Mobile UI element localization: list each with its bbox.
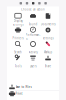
button[interactable]: Share <box>40 54 55 68</box>
staticText: Sound <box>28 22 37 26</box>
staticText: Save to Files <box>16 85 32 89</box>
staticText: Share <box>44 64 51 68</box>
button[interactable]: Layers <box>25 54 40 68</box>
staticText: Performance <box>25 33 40 40</box>
staticText: Tools <box>14 64 21 68</box>
staticText: Search <box>14 50 22 54</box>
button[interactable]: Activity <box>25 40 40 54</box>
button[interactable]: Search <box>10 40 25 54</box>
staticText: Settings <box>12 23 23 26</box>
button[interactable]: Save to Files <box>7 84 59 90</box>
staticText: Settings <box>42 36 53 40</box>
staticText: Markup <box>43 50 52 54</box>
staticText: Printers <box>12 36 23 40</box>
button[interactable]: Documents <box>40 12 55 26</box>
staticText: Choose an action <box>21 8 45 11</box>
button[interactable]: Toolbar action 4 <box>38 1 41 5</box>
staticText: Documents <box>40 22 55 26</box>
staticText: Activity <box>28 50 37 54</box>
button[interactable]: Toolbar action 2 <box>25 1 29 5</box>
button[interactable]: Display <box>10 12 25 26</box>
button[interactable]: Print <box>7 90 59 97</box>
staticText: Display <box>13 19 22 23</box>
button[interactable]: Sound <box>25 12 40 26</box>
button[interactable]: Tools <box>10 54 25 68</box>
button[interactable]: Toolbar action 1 <box>19 1 23 5</box>
button[interactable]: Toolbar action 5 <box>44 1 47 5</box>
button[interactable]: Markup <box>40 40 55 54</box>
button[interactable]: Performance <box>25 26 40 40</box>
staticText: Layers <box>29 64 36 68</box>
button[interactable]: Printers <box>10 26 25 40</box>
button[interactable]: Settings <box>40 26 55 40</box>
button[interactable]: Toolbar action 3 <box>31 1 35 5</box>
staticText: Print <box>16 92 23 95</box>
